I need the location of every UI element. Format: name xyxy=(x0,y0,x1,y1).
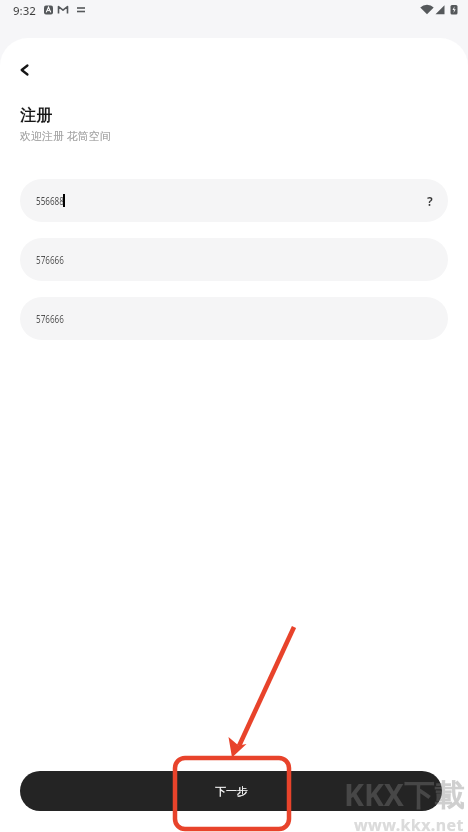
staticText: 欢迎注册 花筒空间 xyxy=(20,128,111,143)
button[interactable]: 576666 xyxy=(20,238,448,281)
staticText: 576666 xyxy=(36,311,64,326)
staticText: KKX下載 xyxy=(344,774,464,815)
button[interactable]: 556688 xyxy=(20,179,448,222)
staticText: 9:32 xyxy=(13,3,36,19)
staticText: 576666 xyxy=(36,252,64,267)
staticText: 下一步 xyxy=(215,784,248,798)
button[interactable]: 576666 xyxy=(20,297,448,340)
staticText: 556688 xyxy=(36,193,64,208)
button[interactable]: 下一步 xyxy=(20,771,442,811)
staticText: www.kkx.net xyxy=(354,814,464,832)
staticText: 注册 xyxy=(20,106,52,126)
staticText: ? xyxy=(427,193,433,209)
button[interactable] xyxy=(6,52,42,88)
